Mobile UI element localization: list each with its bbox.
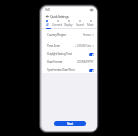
button[interactable]: Next (54, 121, 86, 126)
button[interactable]: Date Format (42, 58, 97, 66)
staticText: 9:41 (45, 8, 50, 12)
staticText: Connections (52, 23, 63, 27)
button[interactable]: All (42, 20, 52, 27)
button[interactable]: Country/Region (42, 31, 97, 39)
staticText: Country/Region (47, 33, 67, 37)
staticText: Sound (76, 23, 84, 27)
button[interactable]: More (85, 20, 96, 27)
staticText: More (87, 23, 94, 27)
staticText: Display (64, 23, 73, 27)
button[interactable]: Synchronize Date/Time (42, 66, 97, 74)
button[interactable]: Connections (52, 20, 63, 27)
staticText: +1:00:00 Paris (75, 44, 91, 48)
staticText: France (83, 33, 91, 37)
staticText: DD/MM/YYYY (77, 60, 94, 64)
button[interactable]: Display (63, 20, 74, 27)
staticText: Date Format (47, 60, 63, 64)
staticText: Time Zone (47, 44, 60, 48)
button[interactable]: Sound (74, 20, 85, 27)
button[interactable]: Toggle (89, 53, 94, 56)
button[interactable]: Daylight Saving Time (42, 50, 97, 58)
staticText: Daylight Saving Time (47, 52, 72, 56)
button[interactable]: Time Zone (42, 42, 97, 50)
staticText: Synchronize Date/Time (47, 68, 75, 72)
staticText: Next (67, 122, 73, 126)
staticText: All (46, 23, 49, 27)
staticText: Quick Settings (50, 14, 69, 19)
button[interactable]: Back (45, 14, 49, 18)
button[interactable]: Toggle (89, 69, 94, 72)
